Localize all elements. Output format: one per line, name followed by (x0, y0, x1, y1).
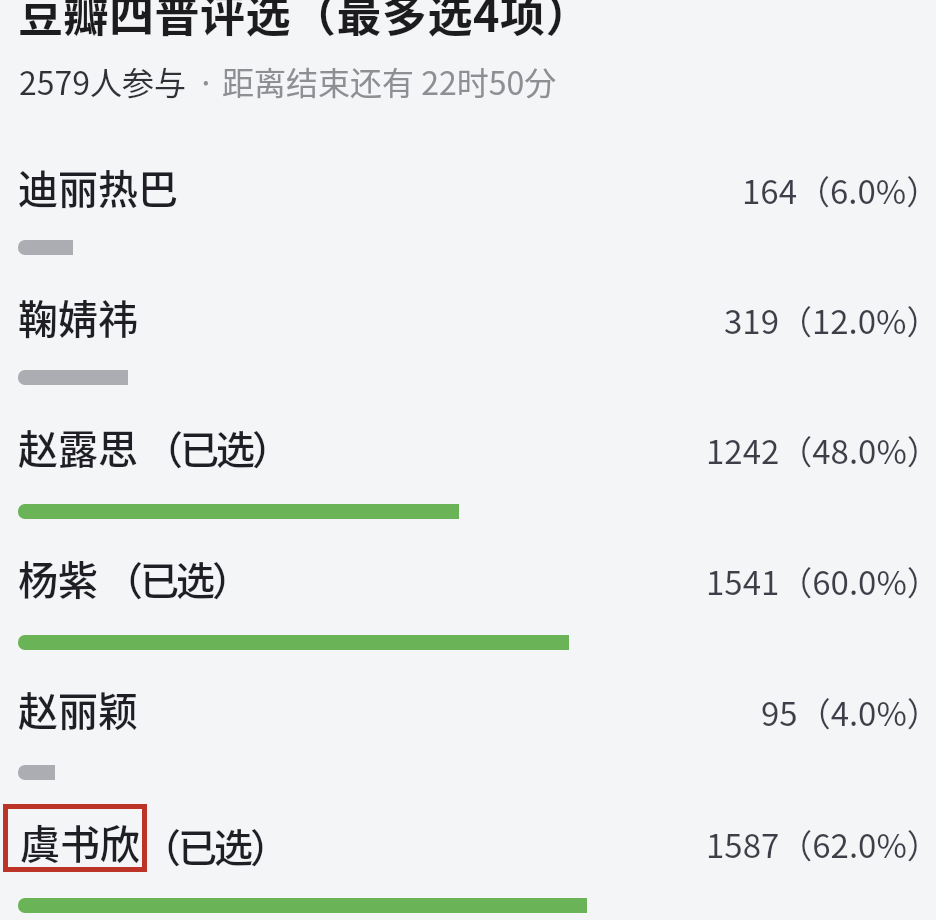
button[interactable]: 虞书欣 1587 votes, 62.0% (0, 790, 936, 920)
staticText: （已选） (142, 817, 287, 873)
staticText: 1242（48.0%） (706, 426, 936, 474)
button[interactable]: 赵露思 1242 votes, 48.0% (0, 396, 936, 527)
staticText: 豆瓣四普评选（最多选4项） (18, 0, 592, 45)
staticText: 95（4.0%） (761, 688, 936, 736)
staticText: · (197, 58, 215, 104)
button[interactable]: 杨紫 1541 votes, 60.0% (0, 527, 936, 658)
staticText: 鞠婧祎 (18, 288, 138, 346)
staticText: 迪丽热巴 (18, 158, 178, 216)
staticText: 1587（62.0%） (706, 820, 936, 868)
staticText: 赵丽颖 (18, 680, 138, 738)
button[interactable]: 迪丽热巴 164 votes, 6.0% (0, 134, 936, 266)
staticText: （已选） (144, 419, 289, 475)
staticText: 164（6.0%） (742, 166, 936, 214)
staticText: 2579人参与 (19, 58, 187, 104)
staticText: 319（12.0%） (724, 296, 936, 344)
staticText: 距离结束还有 22时50分 (222, 58, 557, 104)
staticText: （已选） (104, 550, 249, 606)
staticText: 赵露思 (18, 418, 138, 476)
button[interactable]: 鞠婧祎 319 votes, 12.0% (0, 266, 936, 396)
staticText: 杨紫 (18, 549, 98, 607)
staticText: 虞书欣 (20, 813, 140, 871)
staticText: 1541（60.0%） (706, 557, 936, 605)
button[interactable]: 赵丽颖 95 votes, 4.0% (0, 658, 936, 790)
